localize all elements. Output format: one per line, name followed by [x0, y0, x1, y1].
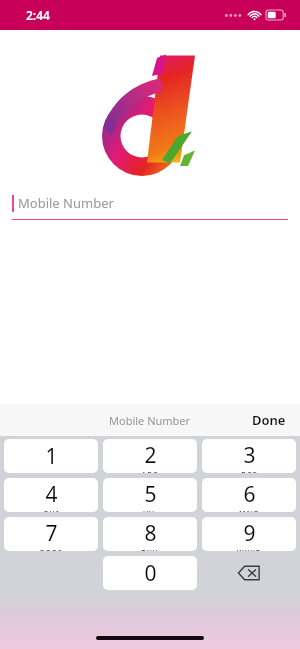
staticText: 5 [144, 480, 157, 509]
staticText: Mobile Number [109, 413, 191, 428]
button[interactable]: 2 [103, 439, 197, 473]
staticText: 2 [144, 441, 157, 470]
staticText: GHI [43, 509, 60, 512]
staticText: 3 [243, 441, 256, 470]
staticText: WXYZ [237, 548, 261, 551]
button[interactable]: Done [238, 406, 300, 434]
staticText: 1 [45, 442, 58, 471]
staticText: Mobile Number [18, 194, 114, 212]
button[interactable]: 3 [202, 439, 296, 473]
staticText: MNO [239, 509, 260, 512]
staticText: 0 [144, 559, 157, 588]
staticText: 6 [243, 480, 256, 509]
staticText: PQRS [40, 548, 63, 551]
button[interactable]: 8 [103, 517, 197, 551]
staticText: 7 [45, 519, 58, 548]
staticText: 4 [45, 480, 58, 509]
staticText: 9 [243, 519, 256, 548]
button[interactable]: 0 [103, 556, 197, 590]
button[interactable]: 1 [4, 439, 98, 473]
button[interactable]: Delete [202, 556, 296, 590]
button[interactable]: 5 [103, 478, 197, 512]
staticText: DEF [241, 470, 258, 473]
staticText: Done [252, 411, 286, 429]
button[interactable]: 6 [202, 478, 296, 512]
staticText: TUV [141, 548, 159, 551]
button[interactable]: 4 [4, 478, 98, 512]
staticText: ABC [141, 470, 159, 473]
staticText: 8 [144, 519, 157, 548]
button[interactable]: 7 [4, 517, 98, 551]
staticText: JKL [143, 509, 157, 512]
button[interactable]: 9 [202, 517, 296, 551]
staticText: 2:44 [26, 7, 50, 23]
